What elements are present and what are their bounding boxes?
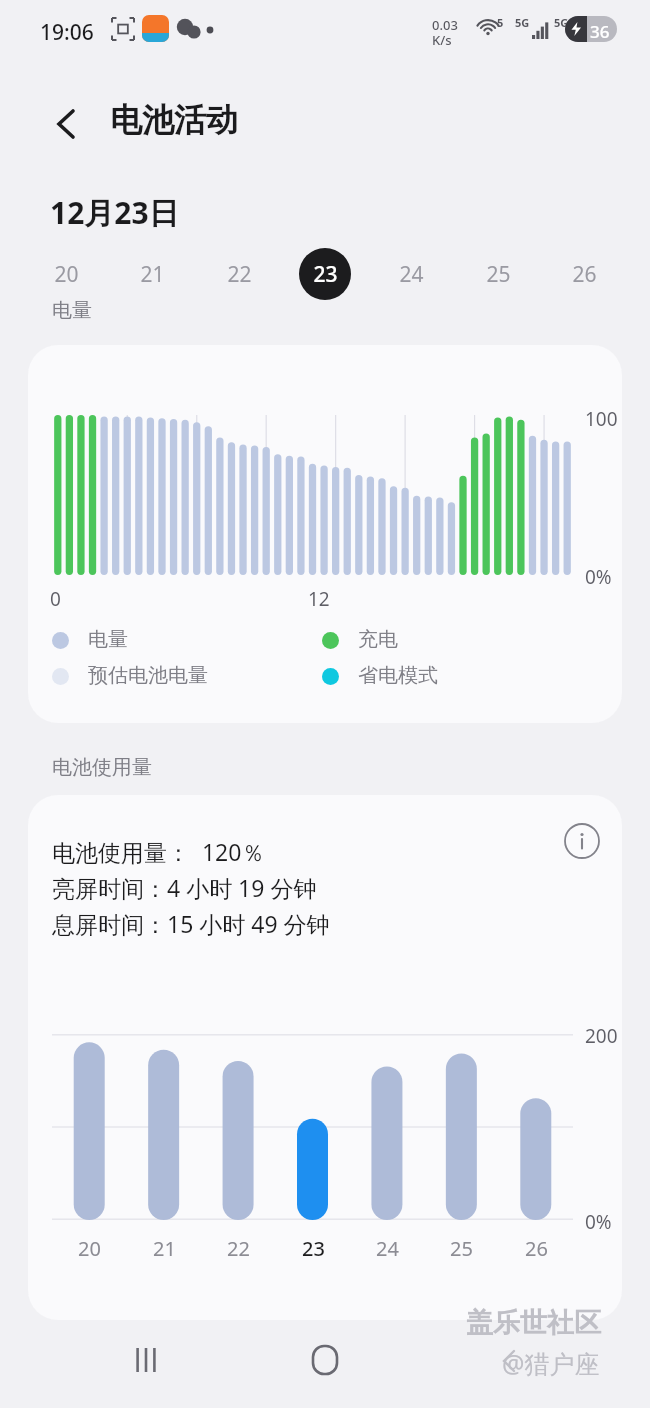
staticText: 0% (585, 564, 612, 590)
button[interactable]: 21 (126, 248, 178, 300)
staticText: 电池使用量： 120％ (52, 836, 265, 867)
staticText: 预估电池电量 (88, 663, 208, 688)
button[interactable]: Back (38, 96, 94, 152)
staticText: 息屏时间：15 小时 49 分钟 (52, 908, 330, 939)
staticText: 12 (308, 586, 330, 612)
button[interactable]: Home (289, 1336, 361, 1384)
staticText: 12月23日 (50, 192, 179, 233)
staticText: 电量 (88, 627, 128, 652)
staticText: 36 (590, 20, 610, 42)
staticText: 23 (313, 260, 338, 289)
staticText: 22 (227, 1235, 250, 1262)
staticText: 5G (554, 15, 569, 30)
staticText: 21 (153, 1235, 176, 1262)
staticText: 100 (585, 406, 618, 432)
staticText: 20 (78, 1235, 101, 1262)
staticText: 26 (525, 1235, 548, 1262)
button[interactable] (28, 795, 622, 1320)
button[interactable]: 25 (472, 248, 524, 300)
button[interactable]: 22 (213, 248, 265, 300)
staticText: 省电模式 (358, 663, 438, 688)
staticText: 5G (515, 15, 530, 30)
button[interactable]: 24 (385, 248, 437, 300)
staticText: 24 (399, 260, 424, 289)
staticText: 0% (585, 1209, 612, 1235)
staticText: 盖乐世社区 (466, 1306, 601, 1340)
button[interactable]: 20 (40, 248, 92, 300)
staticText: 亮屏时间：4 小时 19 分钟 (52, 872, 317, 903)
staticText: 22 (227, 260, 252, 289)
staticText: 26 (572, 260, 597, 289)
staticText: 0 (50, 586, 61, 612)
staticText: 充电 (358, 627, 398, 652)
staticText: 25 (450, 1235, 473, 1262)
staticText: 24 (376, 1235, 399, 1262)
staticText: 5 (497, 15, 504, 30)
staticText: 25 (486, 260, 511, 289)
staticText: 200 (585, 1023, 618, 1049)
staticText: 电池使用量 (52, 755, 152, 780)
staticText: 21 (140, 260, 165, 289)
staticText: 23 (302, 1235, 325, 1262)
staticText: K/s (432, 31, 452, 49)
staticText: @猎户座 (502, 1346, 600, 1380)
button[interactable]: Recents (110, 1336, 182, 1384)
button[interactable] (28, 345, 622, 723)
button[interactable]: 23 (299, 248, 351, 300)
staticText: 19:06 (40, 18, 94, 47)
staticText: 20 (54, 260, 79, 289)
button[interactable]: Info (558, 817, 606, 865)
button[interactable]: 26 (558, 248, 610, 300)
staticText: 0.03 (432, 16, 458, 34)
staticText: 电池活动 (110, 100, 238, 140)
staticText: 电量 (52, 298, 92, 323)
